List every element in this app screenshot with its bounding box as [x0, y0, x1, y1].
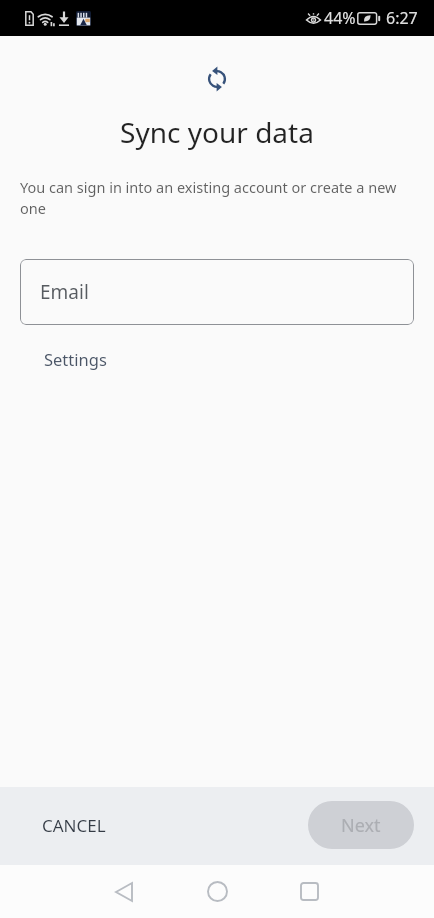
staticText: CANCEL: [42, 814, 106, 837]
button[interactable]: Home: [189, 865, 245, 918]
button[interactable]: Recent apps: [281, 865, 337, 918]
button[interactable]: Settings: [32, 341, 119, 377]
staticText: Settings: [44, 348, 107, 370]
staticText: Sync your data: [0, 113, 434, 151]
staticText: You can sign in into an existing account…: [20, 177, 414, 218]
staticText: Email: [40, 279, 89, 305]
staticText: Next: [341, 813, 381, 838]
button[interactable]: Back: [96, 865, 152, 918]
button[interactable]: Email: [20, 259, 414, 325]
staticText: 6:27: [386, 7, 418, 29]
button[interactable]: CANCEL: [26, 804, 122, 847]
button[interactable]: Next: [308, 801, 414, 849]
staticText: 44%: [324, 7, 356, 29]
